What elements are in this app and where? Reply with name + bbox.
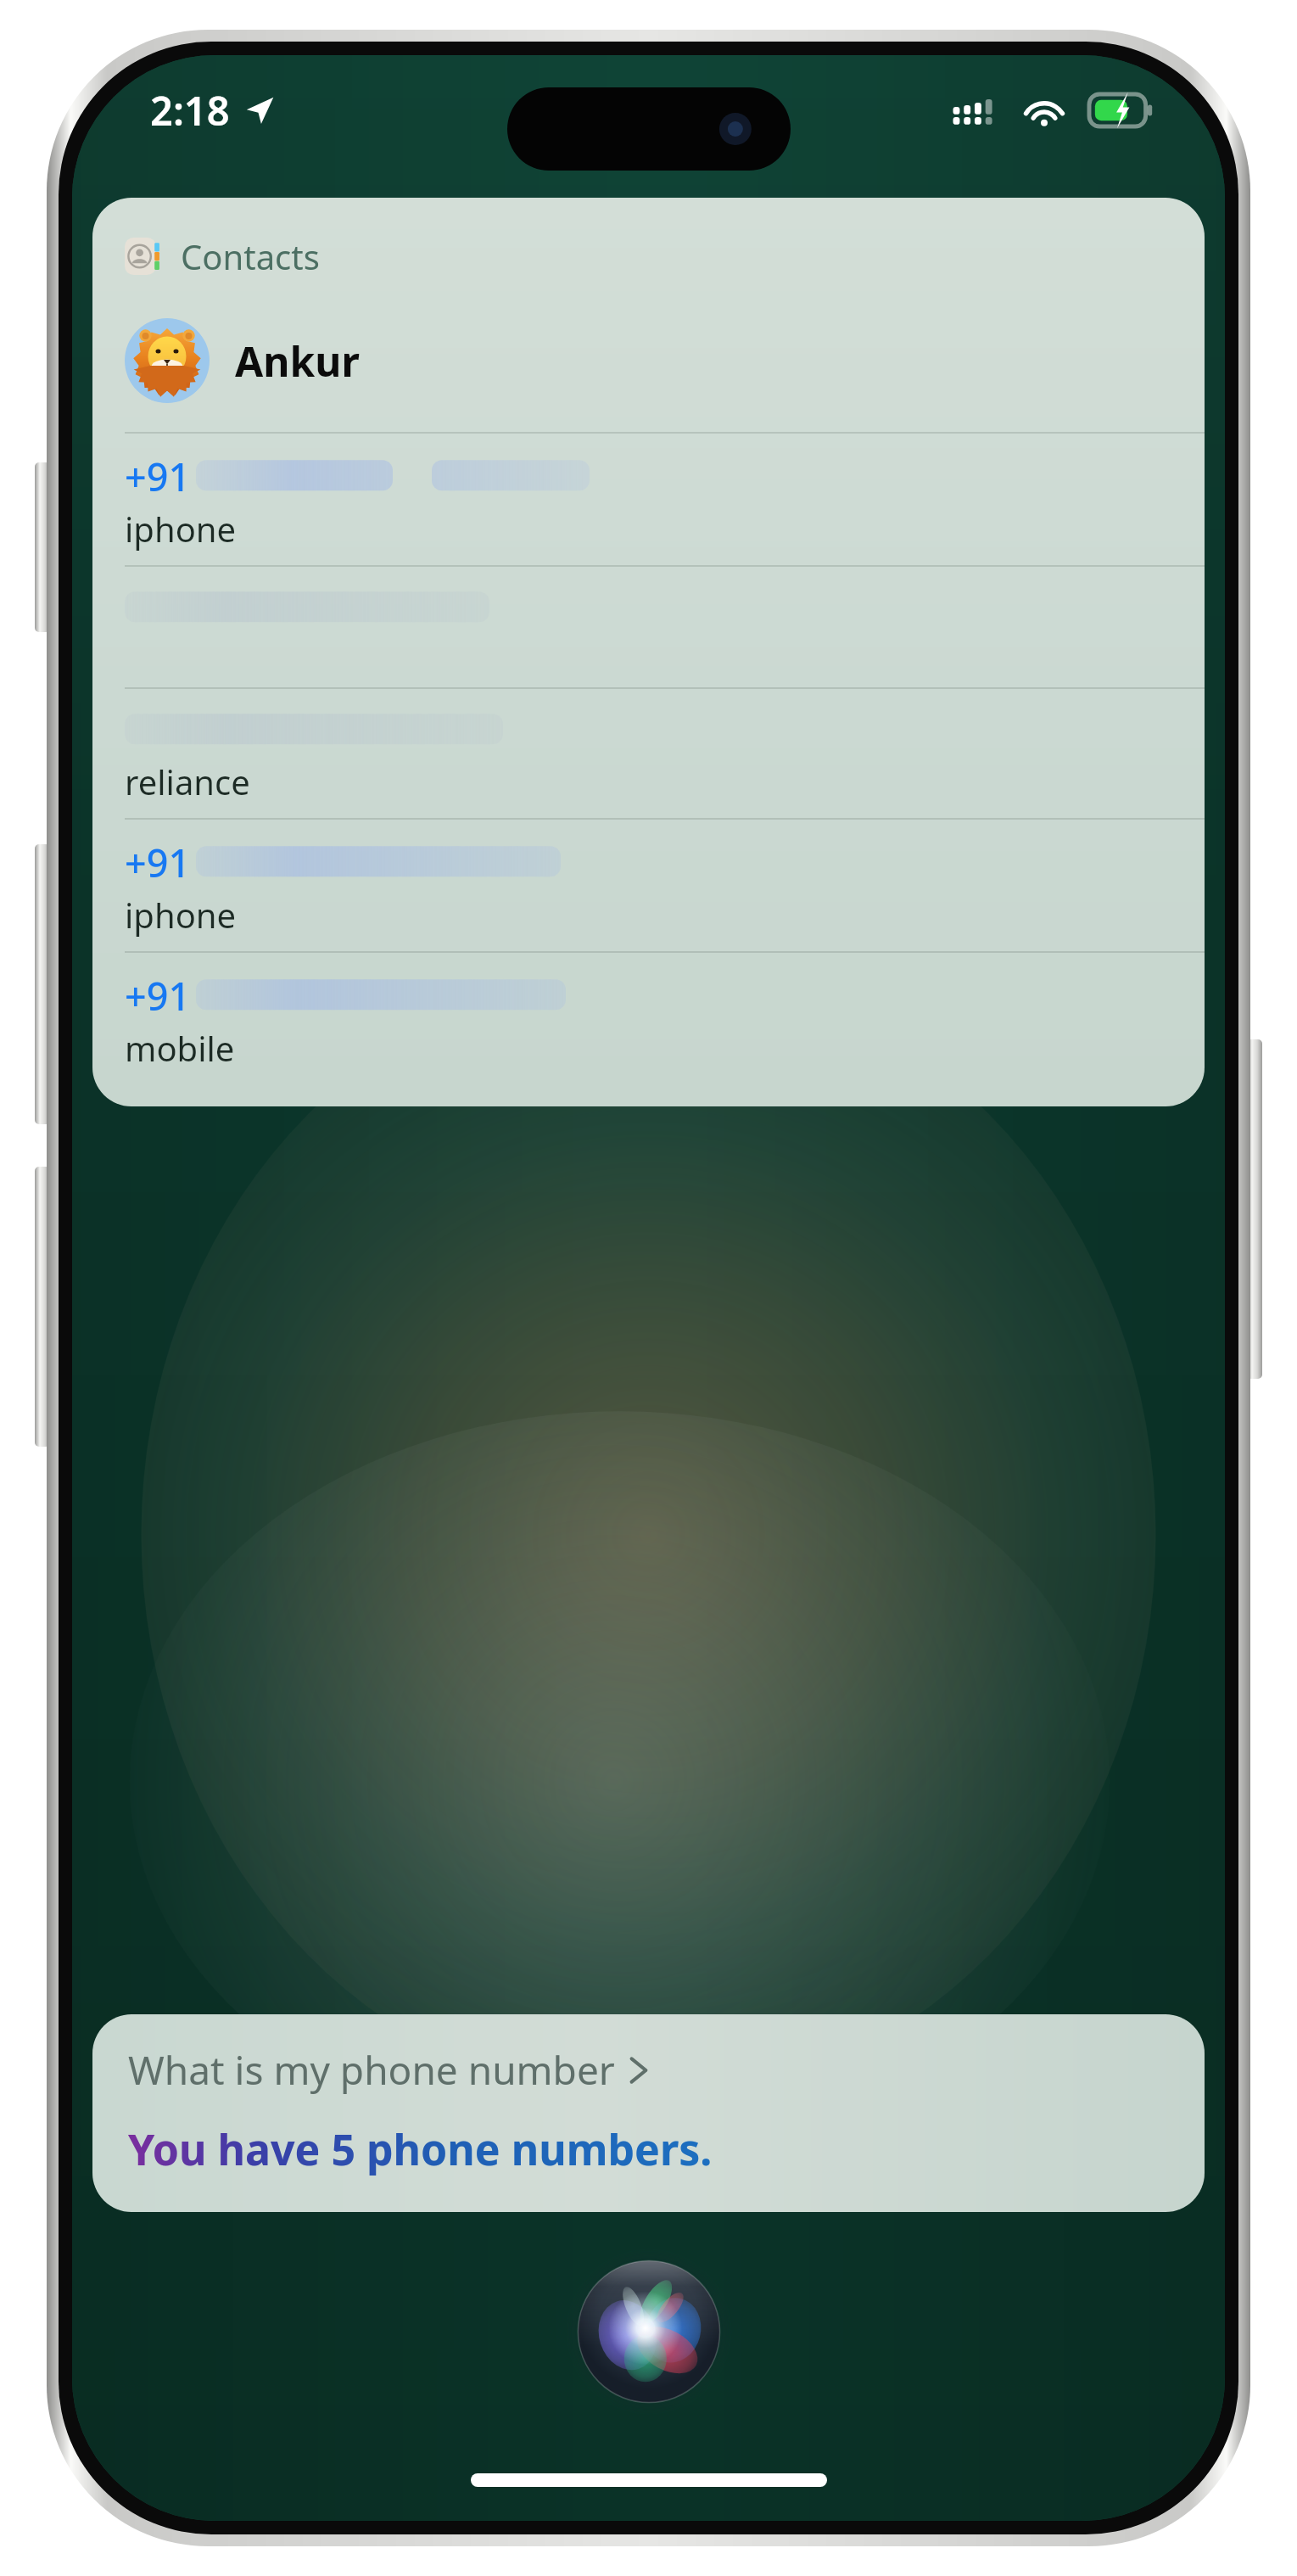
staticText: iphone [125, 506, 237, 552]
button[interactable]: +91 [92, 434, 1205, 565]
staticText: 2:18 [150, 83, 230, 137]
button[interactable]: Ankur [125, 318, 1205, 403]
staticText: iphone [125, 892, 237, 938]
staticText: What is my phone number [128, 2043, 615, 2097]
button[interactable]: What is my phone number [92, 2014, 1205, 2212]
button[interactable]: Contacts [92, 198, 1205, 1106]
button[interactable]: +91 [92, 820, 1205, 951]
button[interactable]: Siri [568, 2251, 730, 2412]
staticText: Contacts [181, 233, 320, 279]
staticText: +91 [125, 837, 191, 888]
staticText: +91 [125, 970, 191, 1022]
staticText: Ankur [235, 333, 360, 389]
staticText: reliance [125, 759, 250, 804]
button[interactable]: reliance [92, 689, 1205, 818]
staticText: You have 5 phone numbers. [128, 2120, 713, 2178]
button[interactable]: +91 [92, 953, 1205, 1084]
staticText: mobile [125, 1025, 235, 1071]
button[interactable] [92, 567, 1205, 687]
button[interactable]: Contacts [125, 233, 320, 279]
staticText: +91 [125, 451, 191, 502]
